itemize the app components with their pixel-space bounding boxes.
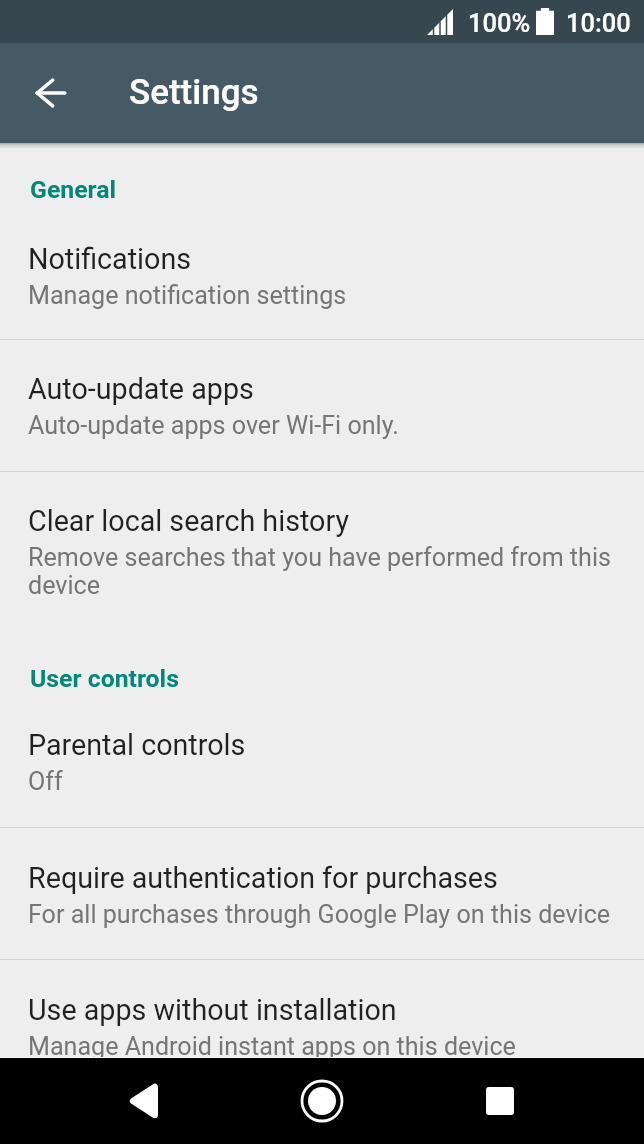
staticText: 100% bbox=[468, 8, 531, 38]
staticText: 10:00 bbox=[566, 8, 631, 38]
staticText: Auto-update apps bbox=[28, 372, 254, 406]
button[interactable]: Back bbox=[18, 61, 82, 125]
button[interactable]: Back bbox=[108, 1066, 178, 1136]
button[interactable]: Home bbox=[287, 1066, 357, 1136]
staticText: User controls bbox=[30, 664, 179, 693]
staticText: Settings bbox=[129, 72, 259, 113]
button[interactable]: Notifications bbox=[0, 242, 644, 310]
staticText: Use apps without installation bbox=[28, 993, 397, 1027]
staticText: Parental controls bbox=[28, 728, 246, 762]
staticText: Off bbox=[28, 768, 63, 796]
button[interactable]: Use apps without installation bbox=[0, 993, 644, 1057]
staticText: Remove searches that you have performed … bbox=[28, 544, 622, 600]
staticText: Manage Android instant apps on this devi… bbox=[28, 1033, 516, 1057]
button[interactable]: Require authentication for purchases bbox=[0, 861, 644, 929]
staticText: General bbox=[30, 175, 117, 204]
staticText: Notifications bbox=[28, 242, 192, 276]
staticText: For all purchases through Google Play on… bbox=[28, 901, 611, 929]
button[interactable]: Recent apps bbox=[465, 1066, 535, 1136]
staticText: Require authentication for purchases bbox=[28, 861, 498, 895]
button[interactable]: Clear local search history bbox=[0, 504, 644, 600]
button[interactable]: Parental controls bbox=[0, 728, 644, 796]
button[interactable]: Auto-update apps bbox=[0, 372, 644, 440]
staticText: Auto-update apps over Wi-Fi only. bbox=[28, 412, 399, 440]
staticText: Clear local search history bbox=[28, 504, 349, 538]
staticText: Manage notification settings bbox=[28, 282, 347, 310]
